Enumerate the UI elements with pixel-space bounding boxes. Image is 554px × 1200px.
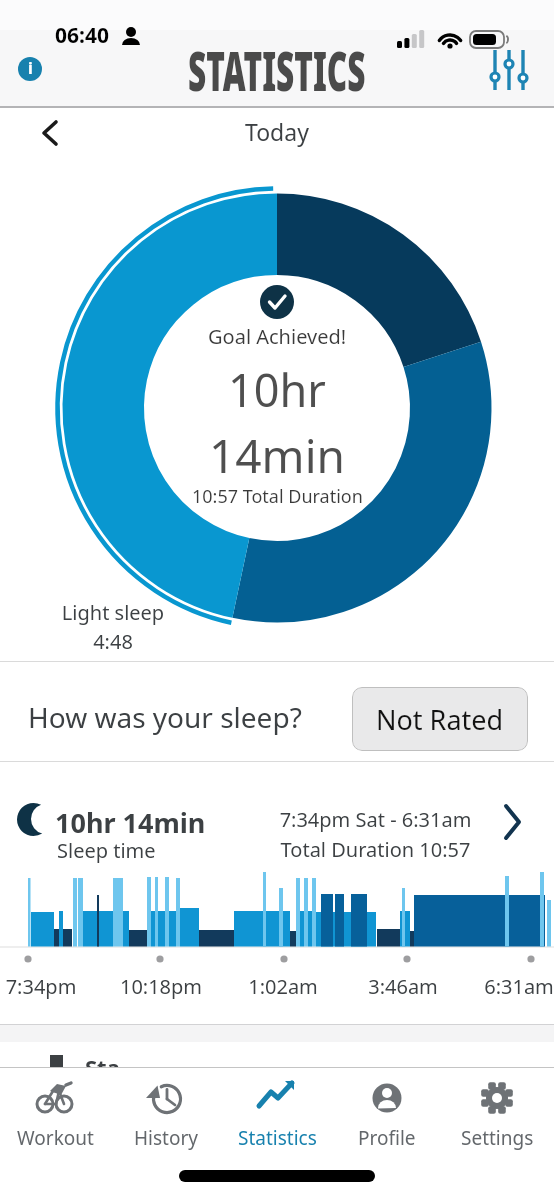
staticText: 06:40: [55, 21, 109, 50]
button[interactable]: History: [114, 1071, 218, 1151]
button[interactable]: [28, 108, 72, 152]
staticText: STATISTICS: [188, 33, 366, 107]
staticText: 6:31am: [459, 973, 554, 1000]
staticText: 7:34pm Sat - 6:31am: [278, 806, 473, 833]
staticText: Goal Achieved!: [208, 323, 347, 350]
button[interactable]: Workout: [3, 1071, 107, 1151]
staticText: Workout: [17, 1125, 94, 1151]
staticText: i: [28, 57, 33, 79]
staticText: Profile: [358, 1125, 416, 1151]
staticText: 14min: [209, 424, 345, 487]
staticText: Sleep time: [57, 837, 156, 864]
staticText: 10:18pm: [101, 973, 221, 1000]
staticText: History: [134, 1125, 198, 1151]
button[interactable]: Statistics: [225, 1071, 329, 1151]
staticText: 7:34pm: [0, 973, 101, 1000]
button[interactable]: Not Rated: [352, 687, 528, 751]
staticText: Today: [245, 116, 309, 147]
staticText: Total Duration 10:57: [278, 836, 473, 863]
staticText: 3:46am: [343, 973, 463, 1000]
staticText: 1:02am: [223, 973, 343, 1000]
staticText: Light sleep: [28, 599, 198, 626]
button[interactable]: i: [16, 55, 44, 83]
staticText: How was your sleep?: [28, 698, 302, 736]
staticText: Statistics: [238, 1125, 317, 1151]
button[interactable]: Profile: [335, 1071, 439, 1151]
button[interactable]: 10hr 14min: [0, 762, 554, 1022]
staticText: Sta: [85, 1052, 120, 1067]
staticText: 10:57 Total Duration: [192, 484, 363, 509]
staticText: 4:48: [28, 628, 198, 655]
button[interactable]: [483, 44, 533, 94]
staticText: 10hr 14min: [55, 804, 206, 841]
button[interactable]: Settings: [445, 1071, 549, 1151]
staticText: Settings: [461, 1125, 534, 1151]
staticText: 10hr: [228, 359, 326, 420]
staticText: Not Rated: [376, 701, 504, 738]
